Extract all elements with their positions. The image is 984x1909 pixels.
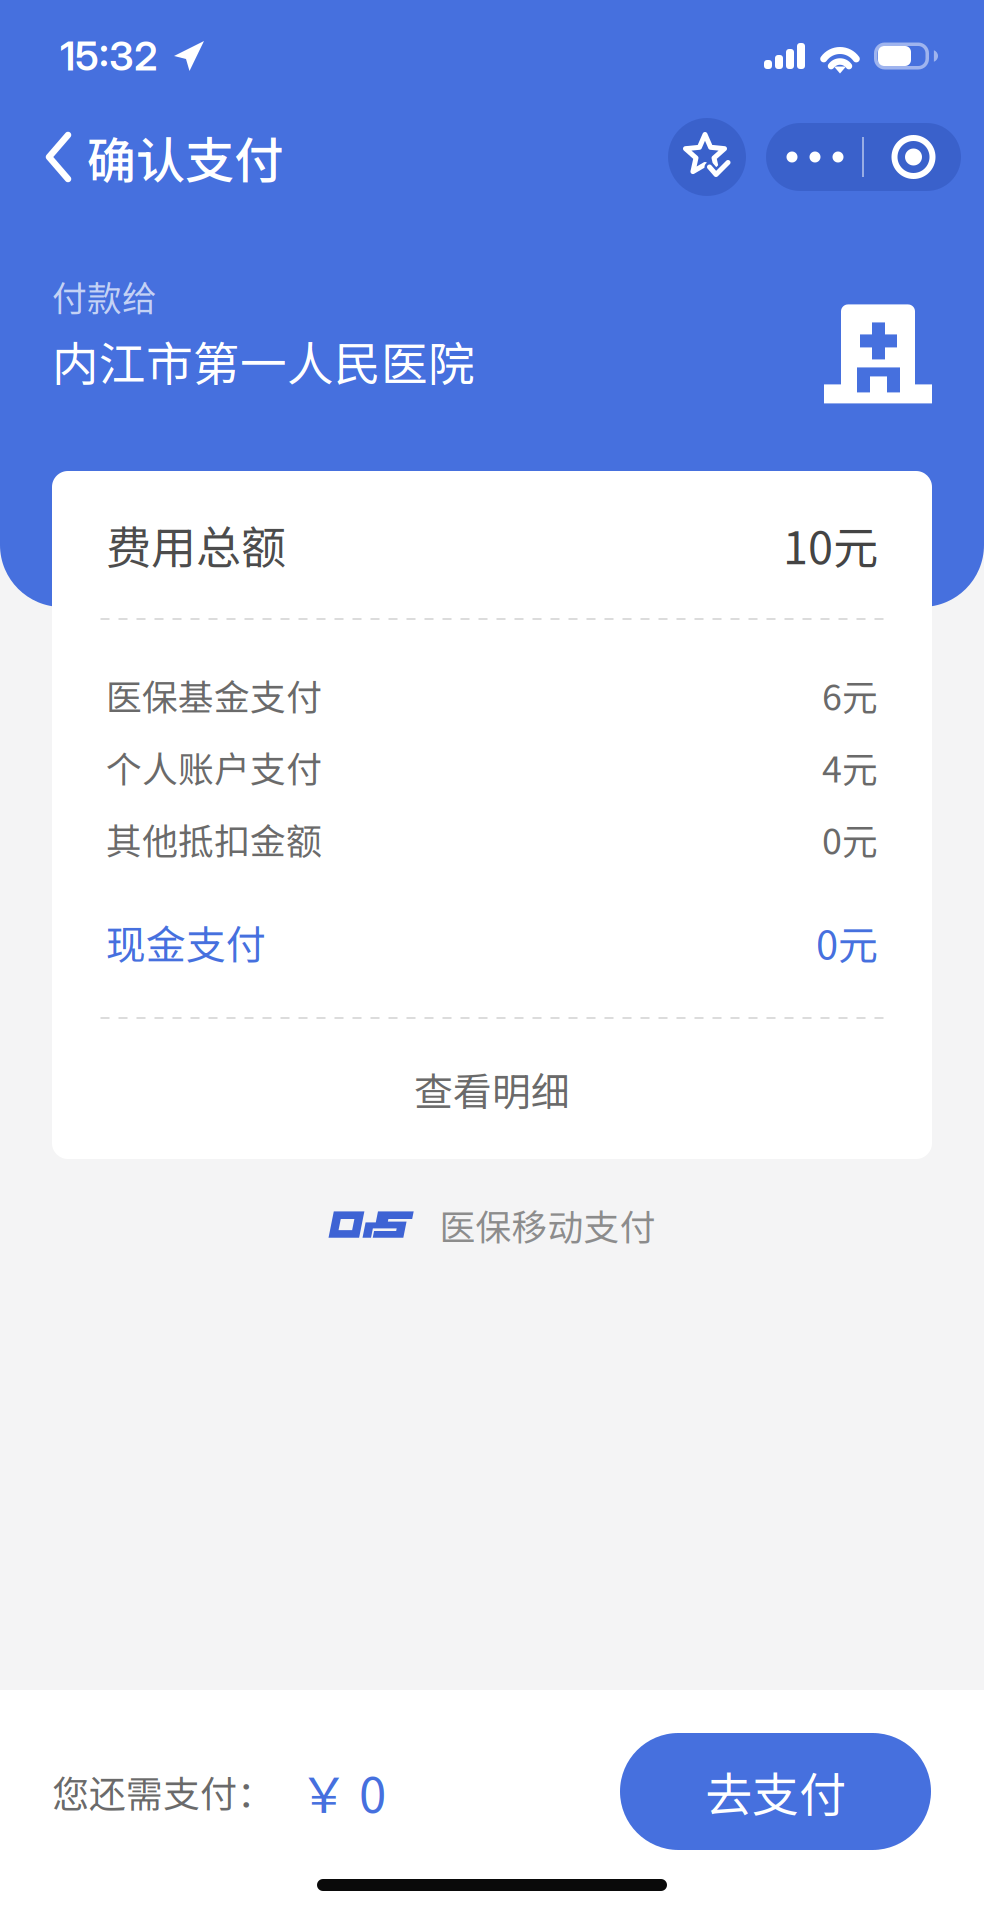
staticText: 费用总额 (106, 512, 286, 577)
staticText: 您还需支付： (52, 1765, 274, 1818)
button[interactable]: 去支付 (620, 1733, 931, 1850)
staticText: 医保移动支付 (439, 1199, 655, 1251)
staticText: 其他抵扣金额 (106, 813, 322, 865)
staticText: 付款给 (52, 271, 157, 321)
staticText: 现金支付 (106, 913, 266, 971)
staticText: 10元 (783, 512, 878, 577)
staticText: 6元 (822, 669, 878, 721)
staticText: 查看明细 (414, 1061, 570, 1117)
staticText: 去支付 (705, 1757, 846, 1826)
staticText: 0元 (822, 813, 878, 865)
staticText: 内江市第一人民医院 (52, 327, 475, 394)
button[interactable]: 查看明细 (52, 1019, 932, 1159)
staticText: 15:32 (60, 32, 158, 80)
staticText: 医保基金支付 (106, 669, 322, 721)
button[interactable]: 收藏 (668, 118, 746, 196)
button[interactable]: 返回 (0, 111, 303, 202)
staticText: 4元 (822, 741, 878, 793)
staticText: 0元 (816, 913, 878, 971)
button[interactable]: 关闭小程序 (864, 123, 963, 191)
staticText: 确认支付 (87, 121, 283, 192)
staticText: ￥ 0 (299, 1756, 386, 1827)
button[interactable]: 更多 (754, 123, 862, 191)
staticText: 个人账户支付 (106, 741, 322, 793)
